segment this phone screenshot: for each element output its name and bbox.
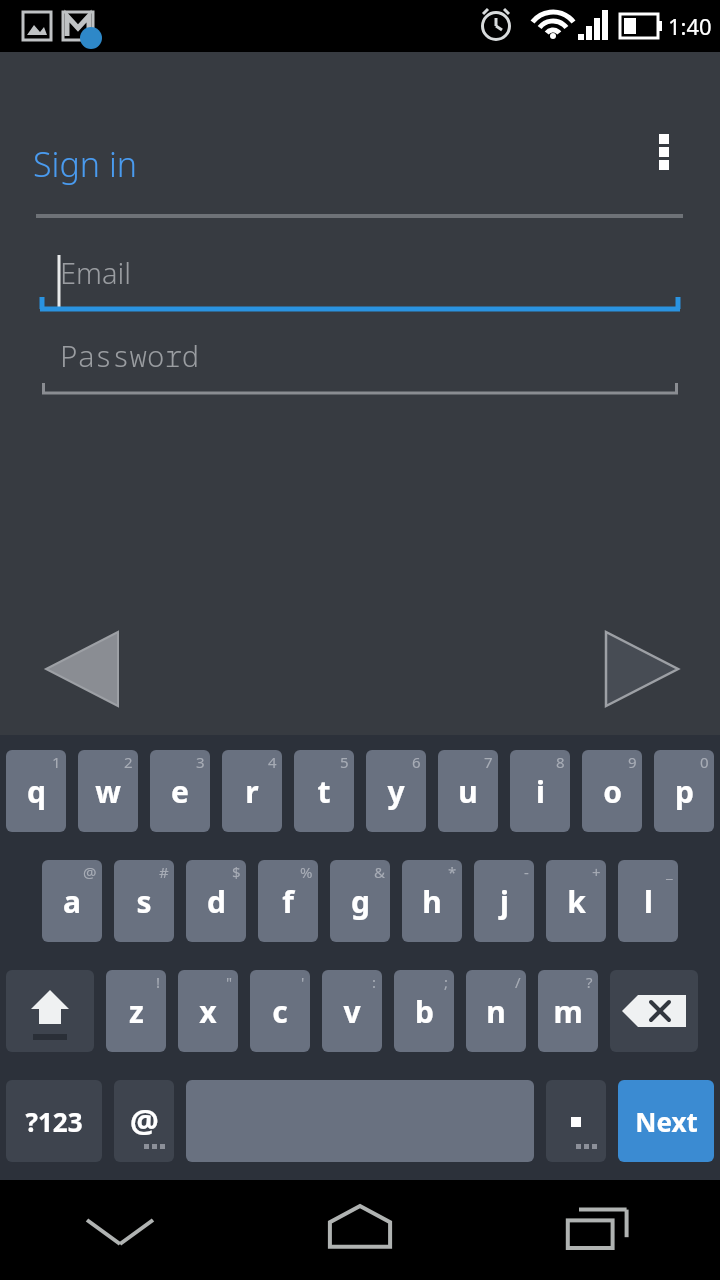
staticText: j (500, 881, 509, 922)
staticText: @ (130, 1099, 159, 1143)
staticText: % (300, 862, 313, 882)
button[interactable]: Shift (6, 970, 94, 1052)
staticText: u (458, 771, 478, 812)
staticText: 6 (412, 752, 421, 772)
staticText: 9 (628, 752, 637, 772)
button[interactable]: g (330, 860, 390, 942)
staticText: + (592, 862, 601, 882)
staticText: t (317, 771, 331, 812)
button[interactable]: d (186, 860, 246, 942)
button[interactable]: Period (546, 1080, 606, 1162)
staticText: r (245, 771, 259, 812)
staticText: i (536, 771, 545, 812)
staticText: _ (666, 862, 673, 882)
staticText: 4 (268, 752, 277, 772)
staticText: b (415, 991, 434, 1032)
staticText: e (171, 771, 189, 812)
staticText: 2 (124, 752, 133, 772)
button[interactable]: More options (636, 112, 692, 168)
button[interactable]: s (114, 860, 174, 942)
staticText: s (136, 881, 152, 922)
button[interactable]: Next (588, 614, 688, 724)
staticText: v (343, 991, 361, 1032)
button[interactable]: Backspace (610, 970, 698, 1052)
button[interactable]: j (474, 860, 534, 942)
staticText: d (207, 881, 226, 922)
staticText: k (567, 881, 586, 922)
button[interactable]: n (466, 970, 526, 1052)
staticText: ; (444, 972, 449, 992)
button[interactable]: @ (114, 1080, 174, 1162)
button[interactable]: r (222, 750, 282, 832)
staticText: y (387, 771, 405, 812)
staticText: Sign in (33, 141, 138, 187)
staticText: ! (156, 972, 161, 992)
button[interactable]: l (618, 860, 678, 942)
button[interactable]: u (438, 750, 498, 832)
button[interactable]: q (6, 750, 66, 832)
staticText: c (272, 991, 288, 1032)
staticText: : (372, 972, 377, 992)
button[interactable]: c (250, 970, 310, 1052)
staticText: 7 (484, 752, 493, 772)
button[interactable]: e (150, 750, 210, 832)
staticText: f (282, 881, 294, 922)
staticText: o (603, 771, 622, 812)
button[interactable]: Home (240, 1180, 480, 1280)
staticText: " (226, 972, 233, 992)
staticText: 3 (196, 752, 205, 772)
staticText: h (422, 881, 442, 922)
staticText: l (644, 881, 653, 922)
staticText: & (374, 862, 385, 882)
button[interactable]: m (538, 970, 598, 1052)
staticText: x (199, 991, 217, 1032)
button[interactable]: Next (618, 1080, 714, 1162)
staticText: 1:40 (668, 11, 712, 41)
staticText: z (129, 991, 144, 1032)
staticText: 1 (52, 752, 61, 772)
staticText: / (515, 972, 521, 992)
staticText: Email (60, 253, 131, 292)
button[interactable]: t (294, 750, 354, 832)
button[interactable]: z (106, 970, 166, 1052)
button[interactable]: i (510, 750, 570, 832)
staticText: @ (83, 862, 97, 882)
staticText: 5 (340, 752, 349, 772)
button[interactable]: y (366, 750, 426, 832)
button[interactable]: f (258, 860, 318, 942)
button[interactable]: k (546, 860, 606, 942)
button[interactable]: a (42, 860, 102, 942)
button[interactable]: h (402, 860, 462, 942)
button[interactable]: Password (42, 330, 678, 400)
staticText: ?123 (25, 1104, 83, 1139)
staticText: 8 (556, 752, 565, 772)
staticText: - (524, 862, 529, 882)
button[interactable]: Recent apps (480, 1180, 720, 1280)
staticText: ? (586, 972, 593, 992)
staticText: 0 (700, 752, 709, 772)
staticText: ' (301, 972, 305, 992)
button[interactable]: p (654, 750, 714, 832)
button[interactable]: ?123 (6, 1080, 102, 1162)
button[interactable]: Email (40, 247, 680, 317)
staticText: $ (232, 862, 241, 882)
staticText: q (27, 771, 46, 812)
staticText: Password (60, 336, 200, 375)
staticText: Next (635, 1104, 698, 1139)
staticText: g (351, 881, 370, 922)
staticText: w (95, 771, 121, 812)
staticText: n (486, 991, 506, 1032)
staticText: p (675, 771, 694, 812)
staticText: # (159, 862, 169, 882)
button[interactable]: b (394, 970, 454, 1052)
staticText: m (553, 991, 583, 1032)
button[interactable]: Hide keyboard (0, 1180, 240, 1280)
button[interactable]: x (178, 970, 238, 1052)
button[interactable]: w (78, 750, 138, 832)
button[interactable]: Previous (36, 614, 136, 724)
staticText: * (448, 862, 457, 882)
button[interactable]: v (322, 970, 382, 1052)
staticText: a (63, 881, 81, 922)
button[interactable]: o (582, 750, 642, 832)
